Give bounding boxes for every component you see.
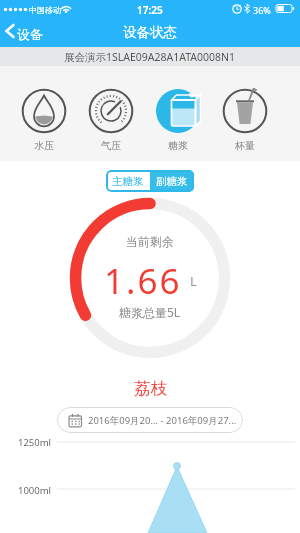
staticText: 1.66 [104, 257, 182, 299]
button[interactable]: 2016年09月20... - 2016年09月27... [57, 407, 243, 433]
button[interactable] [78, 89, 144, 155]
staticText: 糖浆 [168, 139, 188, 152]
staticText: 17:25 [137, 3, 163, 17]
staticText: 主糖浆 [112, 175, 144, 188]
staticText: 36% [253, 4, 271, 16]
staticText: 当前剩余 [126, 234, 174, 249]
staticText: 设备状态 [123, 24, 177, 41]
staticText: 1250ml [18, 436, 52, 449]
staticText: L [190, 272, 197, 290]
button[interactable] [145, 89, 211, 155]
staticText: 副糖浆 [156, 175, 188, 188]
staticText: 1000ml [18, 484, 52, 497]
staticText: 荔枝 [134, 378, 167, 399]
staticText: 水压 [34, 139, 54, 152]
staticText: 设备 [17, 26, 43, 42]
staticText: 杯量 [235, 139, 255, 152]
button[interactable]: 设备 [0, 20, 70, 47]
staticText: 中国移动 [29, 5, 61, 15]
button[interactable] [11, 89, 77, 155]
button[interactable] [212, 89, 278, 155]
staticText: 展会演示1SLAE09A28A1ATA0008N1 [64, 50, 236, 64]
staticText: 糖浆总量5L [119, 304, 181, 320]
staticText: 2016年09月20... - 2016年09月27... [88, 414, 237, 427]
button[interactable]: 副糖浆 [150, 170, 194, 192]
button[interactable]: 主糖浆 [106, 170, 150, 192]
staticText: 气压 [101, 139, 121, 152]
